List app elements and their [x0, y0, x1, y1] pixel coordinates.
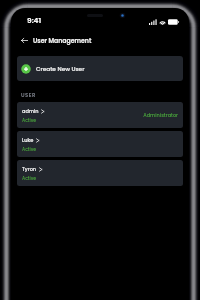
staticText: Luke — [22, 137, 34, 144]
staticText: User Management — [33, 36, 92, 45]
button[interactable]: Back — [17, 33, 31, 47]
staticText: USER — [21, 92, 36, 99]
button[interactable]: Create New User — [17, 56, 183, 81]
button[interactable]: Luke — [17, 131, 183, 157]
staticText: Active — [22, 175, 37, 181]
staticText: admin — [22, 108, 39, 115]
staticText: Tyron — [22, 166, 37, 173]
button[interactable]: Tyron — [17, 160, 183, 186]
staticText: Active — [22, 146, 37, 152]
staticText: Create New User — [36, 65, 85, 73]
staticText: 9:41 — [27, 15, 42, 25]
staticText: Administrator — [17, 112, 178, 119]
staticText: Active — [22, 117, 37, 123]
button[interactable]: admin — [17, 102, 183, 128]
